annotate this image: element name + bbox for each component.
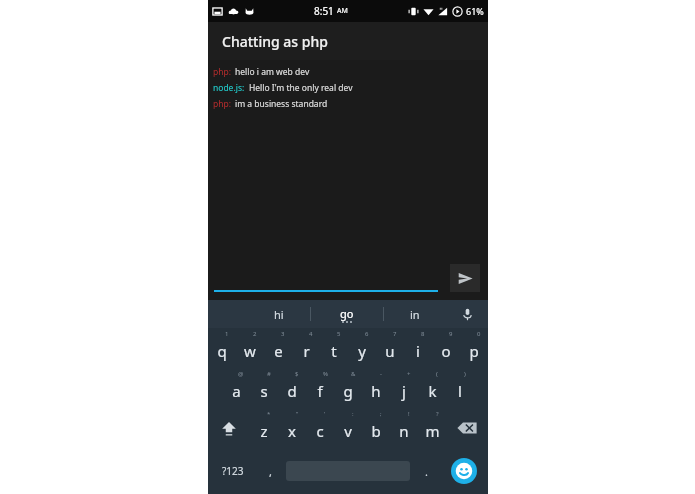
button[interactable]: hi [248, 300, 310, 328]
staticText: AM [337, 6, 348, 16]
staticText: go [340, 306, 354, 321]
staticText: r [303, 341, 310, 361]
button[interactable]: 2 [236, 328, 264, 368]
staticText: w [244, 341, 256, 361]
button[interactable]: # [250, 368, 278, 408]
staticText: & [351, 370, 356, 378]
button[interactable]: ? [418, 408, 446, 448]
button[interactable]: * [250, 408, 278, 448]
staticText: % [323, 370, 328, 378]
button[interactable]: Chatting as php [208, 22, 488, 60]
button[interactable]: node.js: [213, 82, 488, 94]
button[interactable]: ) [446, 368, 474, 408]
button[interactable]: 0 [460, 328, 488, 368]
staticText: + [407, 370, 411, 378]
staticText: 61% [466, 5, 484, 17]
staticText: f [317, 381, 323, 401]
staticText: v [344, 421, 352, 441]
staticText: d [287, 381, 297, 401]
staticText: 1 [225, 330, 229, 338]
button[interactable]: ! [390, 408, 418, 448]
button[interactable]: : [334, 408, 362, 448]
button[interactable]: 7 [376, 328, 404, 368]
button[interactable]: ?123 [208, 448, 257, 494]
staticText: - [380, 370, 382, 378]
button[interactable]: @ [222, 368, 250, 408]
button[interactable]: Shift [208, 408, 250, 448]
staticText: 2 [253, 330, 257, 338]
staticText: c [316, 421, 324, 441]
staticText: * [267, 410, 271, 418]
staticText: ; [380, 410, 382, 418]
staticText: : [352, 410, 354, 418]
staticText: k [428, 381, 437, 401]
button[interactable]: ; [362, 408, 390, 448]
button[interactable]: % [306, 368, 334, 408]
button[interactable]: " [278, 408, 306, 448]
button[interactable]: 9 [432, 328, 460, 368]
staticText: 6 [365, 330, 369, 338]
staticText: # [267, 370, 271, 378]
button[interactable]: ( [418, 368, 446, 408]
staticText: hello i am web dev [235, 66, 310, 78]
staticText: x [288, 421, 296, 441]
button[interactable] [214, 262, 438, 292]
staticText: i [416, 341, 420, 361]
staticText: Hello I'm the only real dev [249, 82, 353, 94]
button[interactable]: Emoji [439, 448, 488, 494]
staticText: ) [464, 370, 466, 378]
button[interactable]: 1 [208, 328, 236, 368]
staticText: y [358, 341, 366, 361]
staticText: ! [408, 410, 410, 418]
button[interactable]: Backspace [446, 408, 488, 448]
staticText: php: [213, 66, 231, 78]
staticText: in [410, 307, 420, 322]
button[interactable]: $ [278, 368, 306, 408]
staticText: 8 [421, 330, 425, 338]
button[interactable]: 3 [264, 328, 292, 368]
button[interactable]: & [334, 368, 362, 408]
button[interactable]: , [257, 448, 283, 494]
staticText: ?123 [222, 464, 244, 478]
button[interactable]: in [384, 300, 446, 328]
staticText: t [331, 341, 337, 361]
staticText: o [441, 341, 451, 361]
staticText: $ [295, 370, 299, 378]
staticText: s [260, 381, 268, 401]
button[interactable]: . [413, 448, 439, 494]
button[interactable]: - [362, 368, 390, 408]
staticText: . [425, 464, 428, 479]
button[interactable]: 4 [292, 328, 320, 368]
staticText: ' [324, 410, 326, 418]
staticText: z [260, 421, 268, 441]
staticText: l [458, 381, 462, 401]
button[interactable]: + [390, 368, 418, 408]
staticText: 3 [281, 330, 285, 338]
staticText: n [399, 421, 409, 441]
button[interactable]: 5 [320, 328, 348, 368]
staticText: ( [436, 370, 438, 378]
button[interactable]: php: [213, 66, 488, 78]
staticText: @ [238, 370, 244, 378]
staticText: " [296, 410, 299, 418]
staticText: j [402, 381, 406, 401]
staticText: 5 [337, 330, 341, 338]
staticText: Chatting as php [222, 32, 328, 51]
staticText: node.js: [213, 82, 245, 94]
button[interactable]: Send [450, 264, 480, 292]
staticText: u [385, 341, 395, 361]
button[interactable]: ' [306, 408, 334, 448]
button[interactable]: go [311, 300, 383, 328]
staticText: 4 [309, 330, 313, 338]
staticText: 0 [477, 330, 481, 338]
staticText: ? [436, 410, 439, 418]
button[interactable]: php: [213, 98, 488, 110]
staticText: 8:51 [314, 4, 337, 18]
staticText: , [269, 464, 272, 479]
staticText: a [232, 381, 241, 401]
staticText: im a business standard [235, 98, 328, 110]
button[interactable]: Voice input [446, 300, 488, 328]
button[interactable]: 6 [348, 328, 376, 368]
button[interactable]: 8 [404, 328, 432, 368]
